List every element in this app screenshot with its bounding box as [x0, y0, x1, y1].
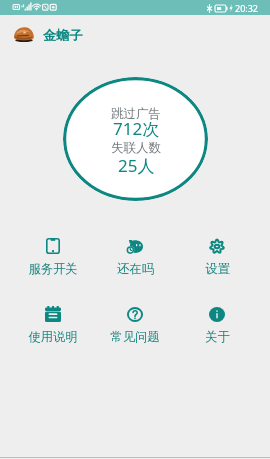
button[interactable]: 设置	[176, 238, 258, 276]
button[interactable]: 还在吗	[94, 238, 176, 276]
staticText: 跳过广告	[111, 106, 161, 122]
button[interactable]: 金蟾子	[0, 26, 93, 43]
button[interactable]: 使用说明	[12, 306, 94, 344]
staticText: 金蟾子	[43, 27, 83, 44]
staticText: 关于	[205, 329, 230, 344]
button[interactable]: 常见问题	[94, 306, 176, 344]
staticText: 常见问题	[110, 329, 160, 344]
staticText: 设置	[205, 261, 230, 276]
staticText: 失联人数	[111, 140, 161, 156]
staticText: 712次	[113, 117, 160, 140]
button[interactable]: 跳过广告	[63, 77, 208, 201]
staticText: 服务开关	[28, 261, 78, 276]
staticText: 还在吗	[117, 261, 154, 276]
staticText: 使用说明	[28, 329, 78, 344]
staticText: 20:32	[235, 2, 259, 14]
button[interactable]: 服务开关	[12, 238, 94, 276]
button[interactable]: 关于	[176, 306, 258, 344]
staticText: 25人	[118, 154, 155, 177]
